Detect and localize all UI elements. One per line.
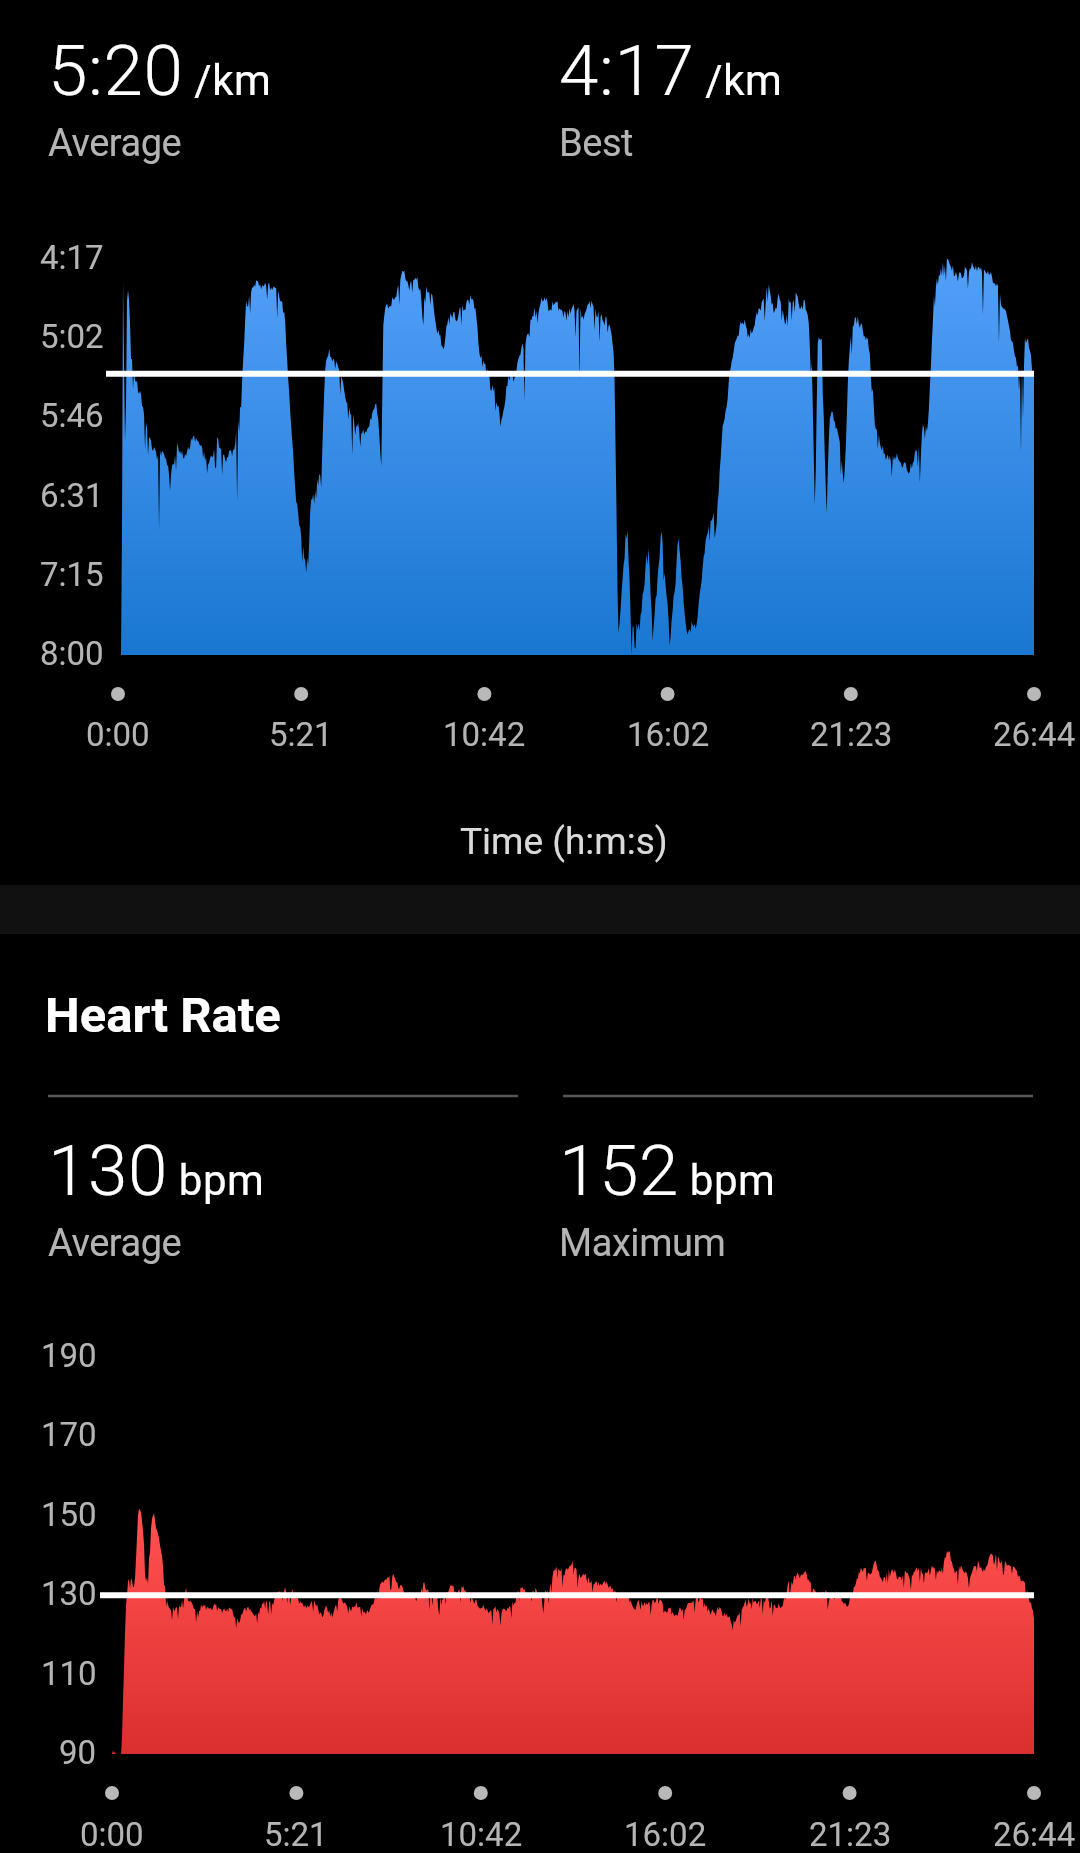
button[interactable]: Heart rate chart — [0, 1300, 1080, 1853]
staticText: 21:23 — [810, 715, 893, 754]
staticText: 4:17 — [40, 238, 104, 277]
staticText: 16:02 — [627, 715, 710, 754]
staticText: 6:31 — [40, 476, 104, 515]
staticText: 8:00 — [40, 634, 104, 673]
staticText: 10:42 — [440, 1815, 523, 1853]
staticText: Average — [48, 121, 182, 166]
button[interactable]: Pace chart — [0, 210, 1080, 770]
button[interactable]: 5:20 /km — [48, 29, 272, 166]
staticText: 170 — [41, 1415, 97, 1454]
staticText: 5:21 — [269, 715, 333, 754]
staticText: 7:15 — [40, 555, 104, 594]
staticText: 130 — [41, 1574, 97, 1613]
staticText: 26:44 — [993, 715, 1076, 754]
staticText: Maximum — [559, 1221, 726, 1266]
staticText: 21:23 — [809, 1815, 892, 1853]
staticText: 5:02 — [40, 317, 104, 356]
staticText: 5:46 — [40, 396, 104, 435]
button[interactable]: 4:17 /km — [559, 29, 783, 166]
staticText: 0:00 — [80, 1815, 144, 1853]
staticText: 4:17 /km — [559, 29, 783, 112]
staticText: 5:20 /km — [48, 29, 272, 112]
button[interactable]: Heart Rate — [45, 987, 281, 1044]
staticText: Average — [48, 1221, 182, 1266]
staticText: Heart Rate — [45, 987, 281, 1044]
staticText: 90 — [59, 1733, 97, 1772]
staticText: 150 — [41, 1495, 97, 1534]
staticText: 152 bpm — [559, 1129, 776, 1212]
button[interactable]: 152 bpm — [559, 1129, 776, 1266]
staticText: 0:00 — [86, 715, 150, 754]
button[interactable]: 130 bpm — [48, 1129, 265, 1266]
staticText: 26:44 — [993, 1815, 1076, 1853]
staticText: Best — [559, 121, 634, 166]
staticText: 16:02 — [624, 1815, 707, 1853]
staticText: 190 — [41, 1336, 97, 1375]
staticText: Time (h:m:s) — [460, 820, 668, 863]
staticText: 5:21 — [264, 1815, 328, 1853]
staticText: 130 bpm — [48, 1129, 265, 1212]
staticText: 10:42 — [443, 715, 526, 754]
staticText: 110 — [41, 1654, 97, 1693]
